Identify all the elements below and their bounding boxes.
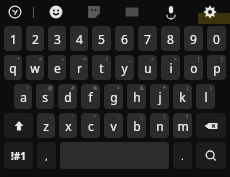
staticText: @ [48, 85, 53, 92]
button[interactable]: 4 [70, 26, 88, 51]
button[interactable]: s [36, 84, 54, 109]
staticText: y [121, 60, 128, 76]
button[interactable]: 0 [207, 26, 226, 51]
staticText: [ [198, 56, 200, 63]
button[interactable]: !#1 [4, 142, 33, 169]
button[interactable]: . [173, 142, 192, 169]
staticText: n [156, 118, 164, 134]
button[interactable]: j [150, 84, 169, 109]
button[interactable]: Shift [4, 113, 33, 138]
staticText: " [94, 114, 97, 121]
button[interactable]: r [70, 55, 88, 80]
staticText: ) [210, 85, 212, 92]
staticText: ^ [117, 85, 120, 92]
button[interactable]: More options [229, 0, 230, 24]
staticText: t [99, 60, 104, 76]
staticText: m [177, 118, 189, 134]
staticText: 3 [54, 31, 61, 47]
button[interactable]: Stickers [75, 0, 113, 24]
staticText: r [77, 60, 82, 76]
button[interactable]: h [127, 84, 146, 109]
staticText: c [88, 118, 94, 134]
button[interactable]: 3 [48, 26, 66, 51]
staticText: w [30, 60, 40, 76]
staticText: : [118, 114, 120, 121]
button[interactable]: Voice input [151, 0, 191, 24]
staticText: + [17, 56, 20, 63]
staticText: 6 [121, 31, 128, 47]
staticText: / [106, 56, 108, 63]
staticText: 0 [213, 31, 220, 47]
button[interactable]: w [26, 55, 44, 80]
staticText: × [39, 56, 42, 63]
staticText: i [169, 60, 173, 76]
button[interactable]: Search [196, 142, 226, 169]
button[interactable]: o [184, 55, 203, 80]
button[interactable]: x [59, 113, 77, 138]
button[interactable]: 9 [184, 26, 203, 51]
button[interactable]: e [48, 55, 66, 80]
button[interactable]: 7 [138, 26, 157, 51]
staticText: j [158, 89, 162, 105]
staticText: z [43, 118, 49, 134]
button[interactable]: Settings [191, 0, 229, 24]
staticText: < [151, 56, 154, 63]
button[interactable]: f [81, 84, 100, 109]
staticText: - [50, 114, 52, 121]
staticText: 7 [144, 31, 151, 47]
staticText: > [174, 56, 177, 63]
staticText: . [181, 150, 184, 162]
staticText: g [110, 89, 118, 105]
button[interactable]: 6 [115, 26, 134, 51]
button[interactable]: 5 [92, 26, 111, 51]
button[interactable]: i [161, 55, 180, 80]
button[interactable]: 1 [4, 26, 22, 51]
button[interactable]: t [92, 55, 111, 80]
staticText: & [140, 85, 144, 92]
button[interactable]: k [173, 84, 192, 109]
button[interactable]: 2 [26, 26, 44, 51]
button[interactable]: m [173, 113, 192, 138]
staticText: b [133, 118, 141, 134]
staticText: ' [72, 114, 74, 121]
button[interactable]: a [14, 84, 32, 109]
button[interactable]: p [207, 55, 226, 80]
button[interactable]: Gboard [0, 0, 30, 24]
button[interactable]: z [37, 113, 55, 138]
staticText: p [213, 60, 221, 76]
staticText: !#1 [11, 149, 26, 163]
staticText: x [65, 118, 72, 134]
staticText: = [83, 56, 86, 63]
staticText: 1 [10, 31, 17, 47]
button[interactable]: GIF [113, 0, 151, 24]
staticText: k [179, 89, 186, 105]
button[interactable]: c [81, 113, 100, 138]
button[interactable]: v [104, 113, 123, 138]
staticText: d [64, 89, 72, 105]
staticText: o [190, 60, 198, 76]
staticText: 5 [98, 31, 105, 47]
button[interactable]: q [4, 55, 22, 80]
button[interactable]: , [37, 142, 56, 169]
staticText: s [42, 89, 48, 105]
staticText: 8 [167, 31, 174, 47]
staticText: , [45, 150, 48, 162]
staticText: f [88, 89, 93, 105]
button[interactable]: n [150, 113, 169, 138]
staticText: u [144, 60, 152, 76]
button[interactable]: Backspace [196, 113, 226, 138]
button[interactable]: 8 [161, 26, 180, 51]
button[interactable]: y [115, 55, 134, 80]
button[interactable]: u [138, 55, 157, 80]
button[interactable]: d [58, 84, 77, 109]
button[interactable]: g [104, 84, 123, 109]
button[interactable]: b [127, 113, 146, 138]
button[interactable]: Emoji [37, 0, 75, 24]
staticText: ] [221, 56, 223, 63]
staticText: 2 [32, 31, 39, 47]
button[interactable]: l [196, 84, 215, 109]
staticText: v [110, 118, 117, 134]
staticText: a [20, 89, 27, 105]
staticText: % [93, 85, 98, 92]
